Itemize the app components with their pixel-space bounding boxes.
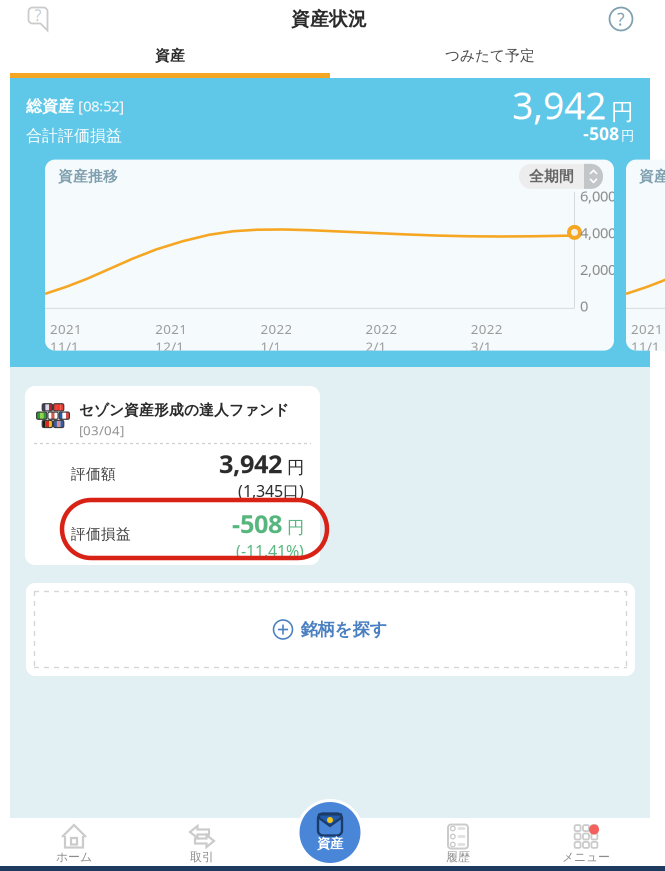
button[interactable]: Help chat: [10, 0, 49, 38]
staticText: 2021: [50, 320, 82, 338]
staticText: 資産: [155, 46, 185, 64]
staticText: ?: [34, 4, 41, 26]
staticText: 11/1: [50, 338, 79, 355]
staticText: 3,942: [219, 447, 282, 480]
staticText: -508: [583, 122, 619, 145]
button[interactable]: 資産: [296, 799, 363, 866]
staticText: セゾン資産形成の達人ファンド: [79, 401, 289, 419]
staticText: 11/1: [631, 338, 660, 355]
staticText: 2022: [260, 320, 292, 338]
staticText: -508: [232, 507, 282, 540]
button[interactable]: 資産: [10, 38, 330, 78]
staticText: 4,000: [580, 223, 616, 242]
button[interactable]: つみたて予定: [330, 38, 650, 78]
staticText: (-11.41%): [236, 540, 304, 561]
staticText: 3/1: [471, 338, 492, 355]
staticText: 円: [287, 517, 304, 538]
staticText: 円: [621, 128, 634, 144]
staticText: 資産状況: [291, 7, 367, 30]
staticText: つみたて予定: [445, 46, 535, 64]
staticText: [03/04]: [79, 421, 124, 439]
staticText: 1/1: [260, 338, 281, 355]
staticText: 2,000: [580, 259, 616, 279]
staticText: ホーム: [56, 850, 92, 864]
staticText: 銘柄を探す: [300, 619, 387, 640]
staticText: 2/1: [366, 338, 387, 355]
staticText: 資産推移: [58, 167, 118, 185]
staticText: 12/1: [155, 338, 184, 355]
button[interactable]: Help: [609, 0, 650, 38]
staticText: 履歴: [446, 850, 470, 864]
staticText: 円: [611, 98, 634, 126]
staticText: 2021: [155, 320, 187, 338]
button[interactable]: メニュー: [522, 818, 650, 866]
staticText: 円: [287, 457, 304, 478]
button[interactable]: 資産: [266, 818, 394, 866]
staticText: 総資産: [26, 96, 74, 116]
staticText: 資産推移: [639, 167, 665, 185]
staticText: (1,345口): [238, 480, 304, 501]
staticText: [08:52]: [78, 96, 124, 115]
button[interactable]: 取引: [138, 818, 266, 866]
staticText: 評価額: [71, 465, 116, 483]
button[interactable]: 履歴: [394, 818, 522, 866]
staticText: メニュー: [562, 850, 610, 864]
staticText: 取引: [190, 850, 214, 864]
staticText: 2022: [366, 320, 398, 338]
staticText: 資産: [317, 835, 343, 852]
staticText: 全期間: [529, 167, 574, 185]
staticText: 2021: [631, 320, 663, 338]
staticText: 0: [580, 296, 588, 316]
staticText: ?: [617, 7, 625, 30]
staticText: 合計評価損益: [26, 126, 122, 146]
button[interactable]: 全期間: [519, 164, 603, 189]
staticText: 評価損益: [71, 525, 131, 543]
button[interactable]: ホーム: [10, 818, 138, 866]
staticText: 3,942: [512, 80, 606, 130]
button[interactable]: 銘柄を探す: [10, 565, 650, 676]
staticText: 2022: [471, 320, 503, 338]
staticText: 6,000: [580, 186, 616, 206]
